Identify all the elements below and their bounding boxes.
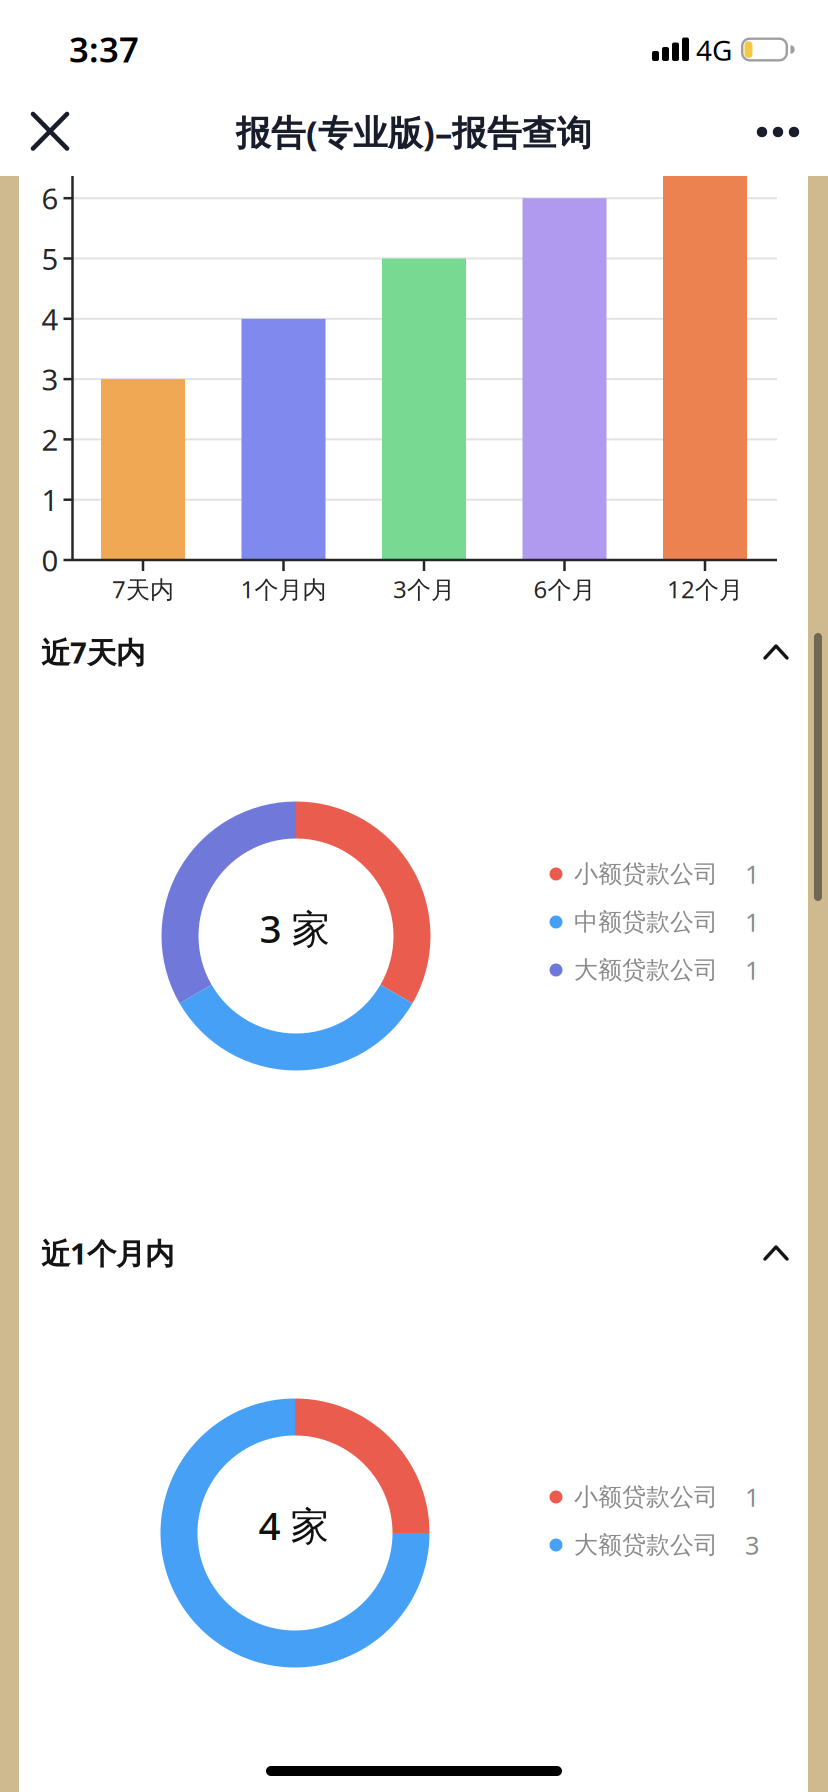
staticText: 2: [41, 420, 58, 459]
staticText: 7天内: [112, 573, 174, 605]
button[interactable]: 近7天内: [20, 624, 808, 680]
staticText: 3: [41, 360, 58, 399]
staticText: 4: [41, 299, 58, 338]
button[interactable]: 近1个月内: [20, 1225, 808, 1281]
staticText: 1: [745, 905, 759, 939]
staticText: 大额贷款公司: [574, 1530, 718, 1560]
staticText: 1: [745, 1480, 759, 1514]
staticText: 3个月: [393, 573, 455, 605]
staticText: 6个月: [533, 573, 595, 605]
staticText: 12个月: [667, 573, 743, 605]
staticText: 大额贷款公司: [574, 955, 718, 985]
staticText: 近1个月内: [41, 1233, 174, 1272]
staticText: 4G: [696, 31, 732, 69]
staticText: 中额贷款公司: [574, 907, 718, 937]
staticText: 1: [41, 480, 58, 519]
staticText: 5: [41, 239, 58, 278]
button[interactable]: More: [748, 110, 808, 154]
staticText: 报告(专业版)–报告查询: [236, 109, 592, 155]
staticText: 1: [745, 953, 759, 987]
button[interactable]: Close: [16, 97, 84, 165]
staticText: 0: [41, 540, 58, 579]
staticText: 小额贷款公司: [574, 1482, 718, 1512]
staticText: 3 家: [259, 902, 330, 954]
staticText: 3:37: [69, 26, 139, 72]
staticText: 1: [745, 857, 759, 891]
staticText: 4 家: [258, 1499, 329, 1551]
staticText: 3: [745, 1528, 759, 1562]
staticText: 6: [41, 179, 58, 218]
staticText: 近7天内: [41, 632, 145, 671]
staticText: 小额贷款公司: [574, 859, 718, 889]
staticText: 1个月内: [240, 573, 326, 605]
